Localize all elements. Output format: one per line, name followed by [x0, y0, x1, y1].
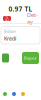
- staticText: 0.97 TL: [8, 5, 32, 13]
- staticText: Detay: [27, 11, 38, 26]
- staticText: %2,4: [5, 8, 9, 29]
- staticText: Kredi: [4, 35, 16, 42]
- staticText: Bölüm: [4, 29, 16, 34]
- staticText: Başvur: [24, 55, 37, 61]
- button[interactable]: Başvur: [22, 52, 39, 64]
